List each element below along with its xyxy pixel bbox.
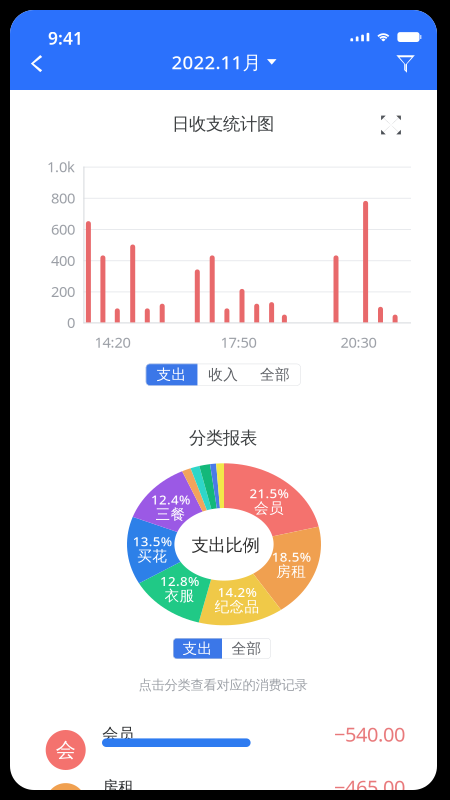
staticText: 800 [51,188,75,208]
staticText: 2022.11月 [171,49,261,74]
staticText: 12.8% [160,572,199,590]
button[interactable]: Back [15,43,57,85]
staticText: 收入 [208,366,238,384]
staticText: 点击分类查看对应的消费记录 [138,677,307,693]
button[interactable]: 会 [10,723,437,776]
staticText: 17:50 [221,332,257,352]
staticText: 400 [51,250,75,270]
button[interactable]: 全部 [249,364,301,386]
staticText: 21.5% [249,484,288,502]
staticText: 买花 [137,547,167,565]
staticText: 18.5% [272,548,311,565]
staticText: 全部 [260,366,290,384]
button[interactable]: 全部 [222,638,271,659]
staticText: 三餐 [156,505,186,523]
staticText: 会员 [102,724,134,744]
staticText: 20:30 [341,332,377,352]
staticText: 0 [67,313,75,332]
staticText: −540.00 [334,721,405,747]
staticText: 衣服 [164,587,194,605]
staticText: 14.2% [217,583,256,601]
staticText: 9:41 [48,26,83,49]
staticText: 600 [51,219,75,239]
staticText: 支出 [182,639,212,657]
staticText: 纪念品 [214,598,259,616]
staticText: 支出比例 [191,535,259,556]
staticText: 会 [56,738,76,762]
button[interactable]: 支出 [146,364,197,386]
staticText: 支出 [157,366,187,384]
staticText: 1.0k [47,157,75,176]
staticText: 房租 [276,563,306,581]
staticText: 14:20 [94,332,130,352]
staticText: 房租 [102,777,134,797]
staticText: 会员 [254,499,284,517]
button[interactable]: 2022.11月 [164,42,283,81]
staticText: 200 [51,282,75,301]
button[interactable]: Expand chart [374,108,408,142]
button[interactable]: Filter [385,43,427,85]
staticText: 分类报表 [189,427,257,449]
button[interactable]: 支出 [173,638,222,659]
button[interactable]: 收入 [197,364,249,386]
staticText: 日收支统计图 [172,113,274,135]
staticText: 全部 [231,639,261,657]
staticText: 13.5% [133,532,172,550]
staticText: −465.00 [334,774,405,800]
staticText: 12.4% [151,490,190,508]
button[interactable]: 房 [10,776,437,800]
